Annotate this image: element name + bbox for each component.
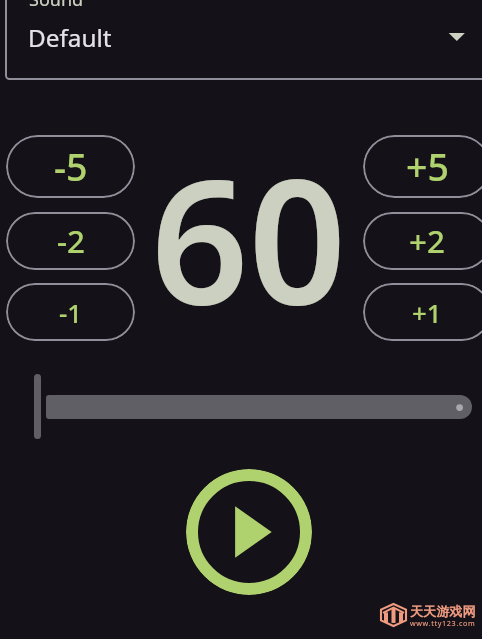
button[interactable]: +1 — [363, 283, 482, 341]
button[interactable] — [5, 0, 482, 80]
staticText: Default — [28, 21, 112, 54]
button[interactable]: +5 — [363, 135, 482, 198]
button[interactable]: Open sound menu — [437, 13, 482, 61]
button[interactable]: -1 — [6, 283, 135, 341]
staticText: +1 — [412, 295, 442, 330]
staticText: -1 — [59, 295, 83, 330]
staticText: 60 — [138, 121, 359, 354]
button[interactable]: Start timer — [186, 469, 312, 595]
staticText: -5 — [54, 141, 88, 192]
button[interactable] — [46, 395, 472, 419]
staticText: +2 — [409, 220, 445, 263]
staticText: Sound — [29, 0, 84, 12]
button[interactable]: +2 — [363, 212, 482, 270]
staticText: www.tty123.com — [410, 618, 476, 628]
staticText: -2 — [57, 220, 85, 263]
staticText: 天天游戏网 — [410, 603, 476, 619]
staticText: +5 — [406, 141, 449, 192]
button[interactable]: -2 — [6, 212, 135, 270]
other: Duration slider — [34, 374, 41, 439]
button[interactable]: -5 — [6, 135, 135, 198]
